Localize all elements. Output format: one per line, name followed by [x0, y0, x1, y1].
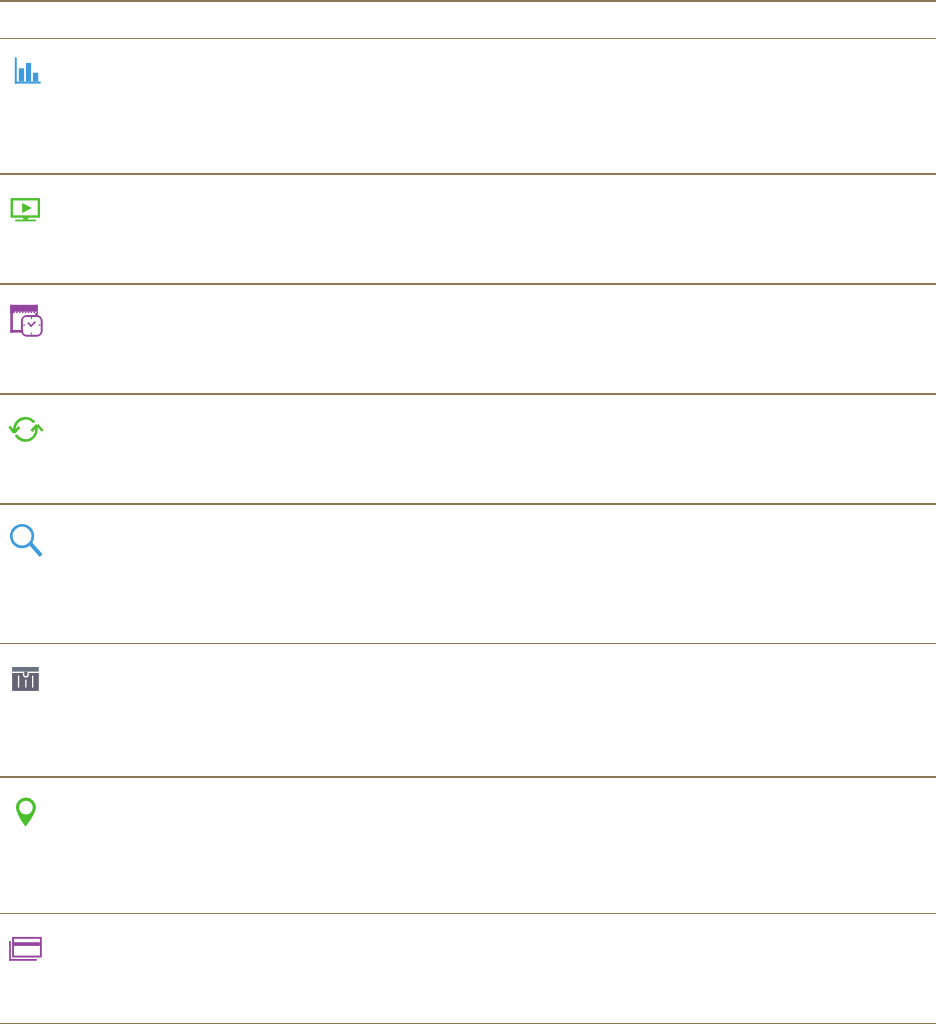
button[interactable]: Search [0, 505, 936, 643]
button[interactable]: Archive [0, 644, 936, 776]
button[interactable]: Places [0, 778, 936, 913]
button[interactable]: Schedule [0, 285, 936, 393]
button[interactable]: Cards [0, 914, 936, 1023]
button[interactable]: Statistics [0, 39, 936, 173]
button[interactable]: Live TV [0, 175, 936, 283]
button[interactable]: Sync [0, 395, 936, 503]
